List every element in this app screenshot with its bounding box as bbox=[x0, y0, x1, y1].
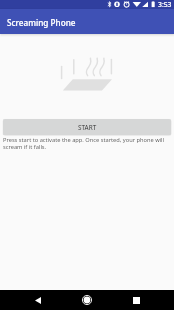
staticText: Press start to activate the app. Once st… bbox=[3, 136, 171, 151]
button[interactable]: Recent apps bbox=[126, 290, 146, 310]
button[interactable]: Back bbox=[28, 290, 48, 310]
button[interactable]: Home bbox=[77, 290, 97, 310]
staticText: Screaming Phone bbox=[7, 17, 76, 28]
staticText: 3:53 bbox=[158, 0, 172, 9]
staticText: START bbox=[78, 123, 97, 132]
button[interactable]: START bbox=[3, 119, 171, 135]
